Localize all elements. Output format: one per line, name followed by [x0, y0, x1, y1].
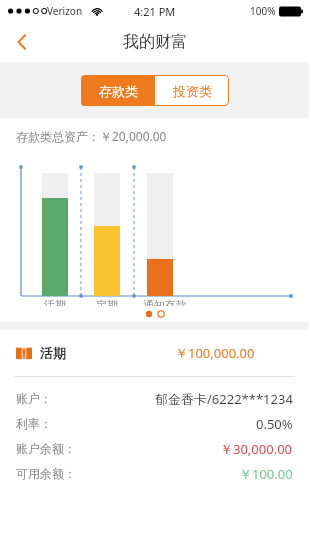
- button[interactable]: Back: [0, 22, 44, 62]
- staticText: 活期: [40, 345, 66, 361]
- staticText: 定期: [96, 298, 118, 312]
- staticText: 郁金香卡/6222***1234: [155, 390, 293, 408]
- staticText: 我的财富: [123, 32, 187, 52]
- button[interactable]: 存款类: [81, 75, 155, 106]
- staticText: 利率：: [16, 416, 52, 431]
- staticText: ￥100,000.00: [175, 344, 255, 362]
- button[interactable]: 投资类: [155, 75, 229, 106]
- staticText: 100%: [250, 4, 276, 18]
- staticText: 通知存款: [143, 298, 187, 312]
- staticText: ￥100.00: [239, 465, 293, 483]
- staticText: Verizon: [47, 4, 83, 18]
- staticText: 账户：: [16, 391, 52, 406]
- button[interactable]: 活期: [0, 330, 309, 376]
- staticText: 活期: [44, 298, 66, 312]
- staticText: 可用余额：: [16, 466, 76, 481]
- staticText: 存款类总资产：￥20,000.00: [16, 128, 167, 144]
- staticText: ￥30,000.00: [220, 440, 293, 458]
- staticText: 存款类: [99, 83, 138, 99]
- staticText: 0.50%: [256, 415, 293, 433]
- staticText: 账户余额：: [16, 441, 76, 456]
- staticText: 4:21 PM: [134, 4, 176, 19]
- staticText: 投资类: [173, 83, 212, 99]
